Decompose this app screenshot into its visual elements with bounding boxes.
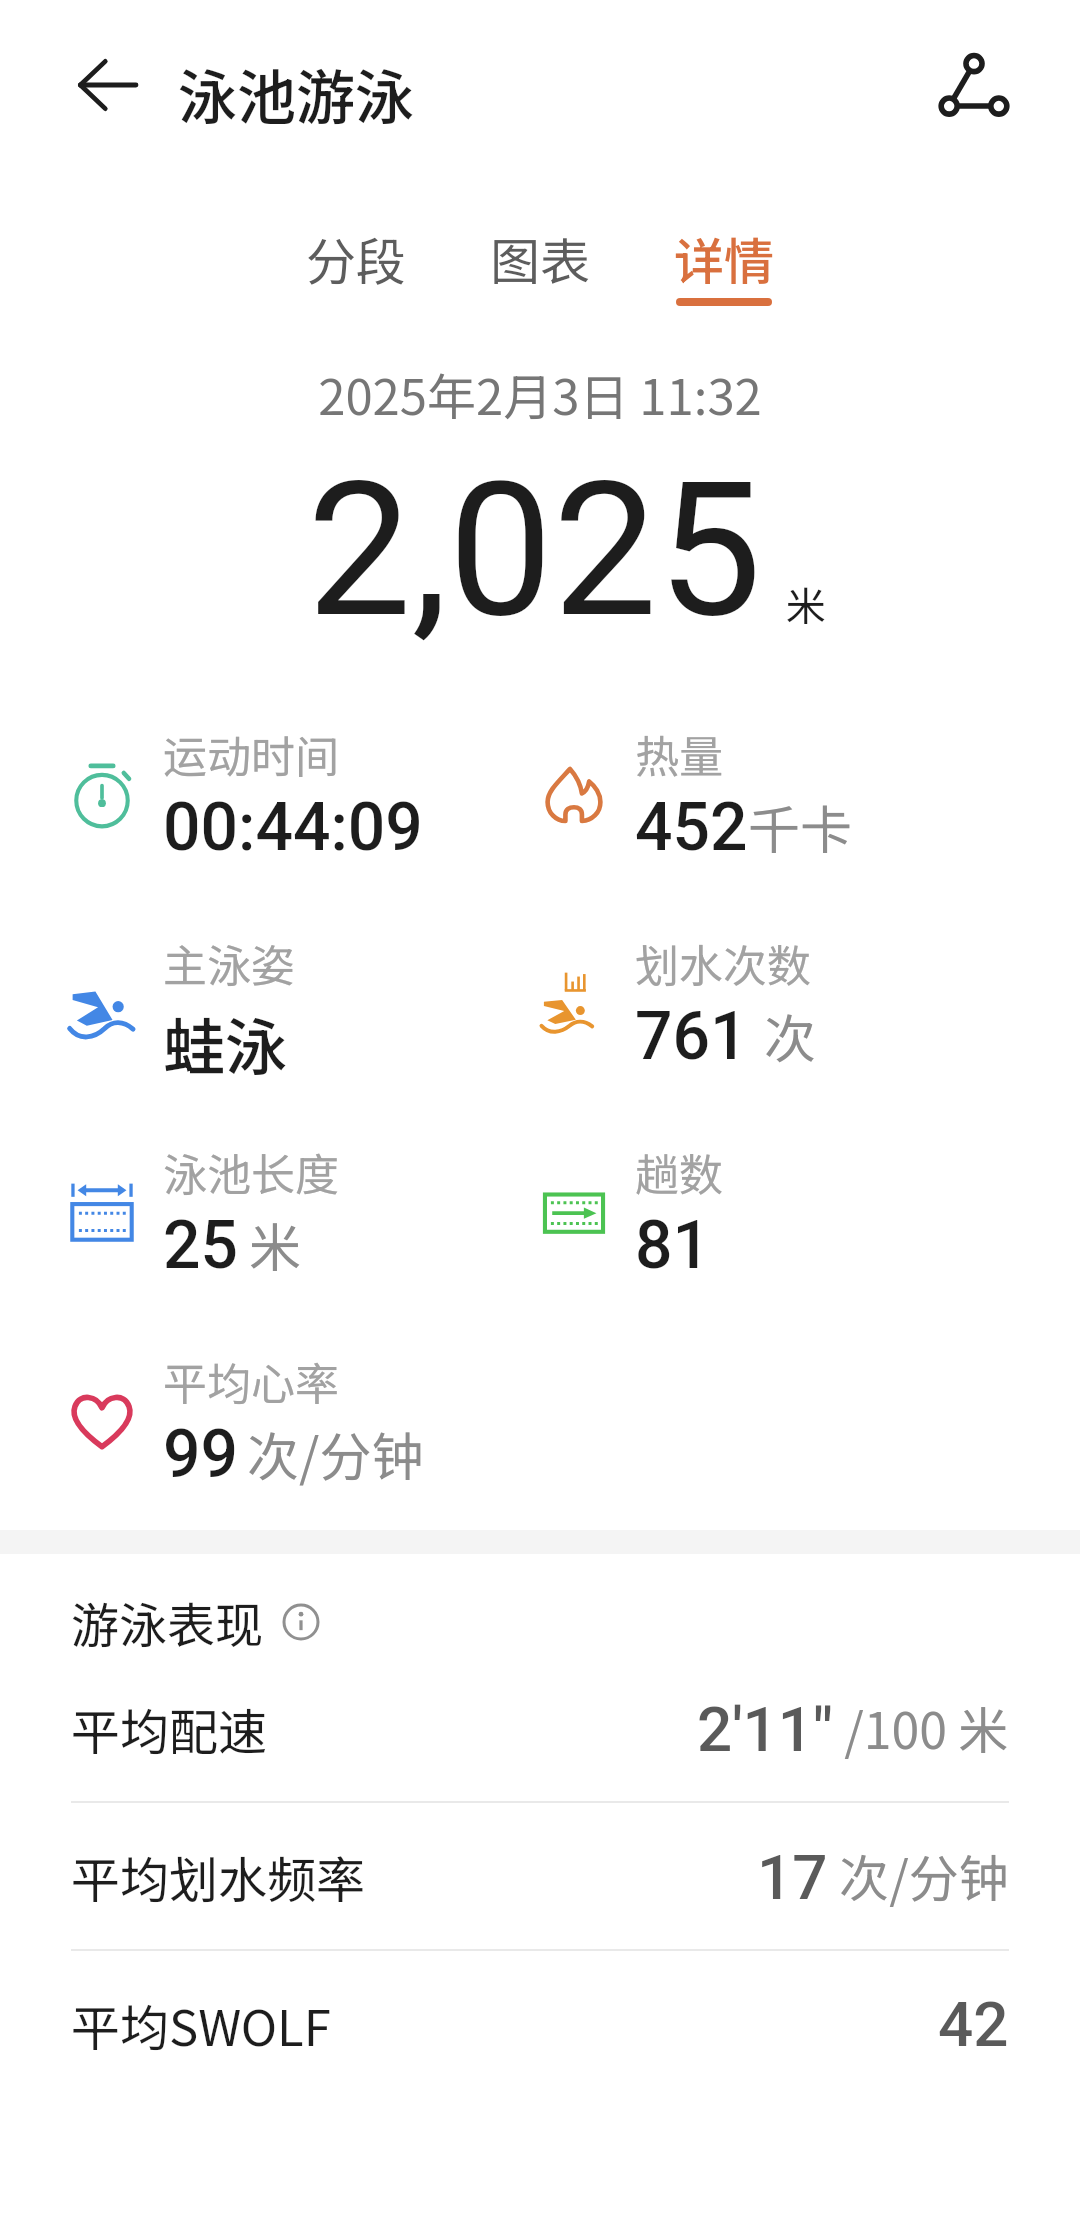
button[interactable]: 平均配速 — [0, 1655, 1080, 1801]
staticText: 运动时间 — [163, 722, 339, 786]
staticText: 761 — [635, 998, 748, 1075]
staticText: 平均划水频率 — [71, 1841, 366, 1912]
button[interactable]: 分段 — [276, 212, 436, 316]
staticText: 主泳姿 — [163, 931, 295, 995]
staticText: 米 — [786, 575, 826, 633]
staticText: 次 — [764, 998, 817, 1073]
staticText: 图表 — [490, 222, 590, 294]
staticText: 千卡 — [748, 789, 853, 864]
staticText: 99 — [163, 1416, 239, 1493]
staticText: 00:44:09 — [163, 789, 423, 866]
staticText: 2,025 — [307, 441, 762, 659]
staticText: 25 — [163, 1207, 239, 1284]
button[interactable]: Back — [44, 32, 170, 138]
staticText: 泳池长度 — [163, 1140, 339, 1204]
staticText: 蛙泳 — [163, 998, 288, 1088]
staticText: 分段 — [306, 222, 406, 294]
button[interactable]: 详情 — [644, 212, 804, 316]
staticText: 划水次数 — [635, 931, 811, 995]
staticText: 次/分钟 — [247, 1416, 424, 1491]
button[interactable]: 图表 — [460, 212, 620, 316]
staticText: 热量 — [635, 722, 723, 786]
staticText: /100 米 — [833, 1691, 1009, 1763]
staticText: 42 — [938, 1988, 1009, 2061]
staticText: 2025年2月3日 11:32 — [0, 358, 1080, 429]
staticText: 平均SWOLF — [71, 1989, 331, 2060]
staticText: 452 — [635, 789, 748, 866]
staticText: 2'11" — [697, 1693, 833, 1766]
staticText: 平均配速 — [71, 1693, 268, 1764]
staticText: 泳池游泳 — [178, 51, 415, 136]
staticText: 游泳表现 — [71, 1587, 264, 1657]
staticText: 米 — [249, 1207, 302, 1282]
staticText: 次/分钟 — [828, 1839, 1009, 1911]
staticText: 详情 — [674, 222, 774, 294]
staticText: 81 — [635, 1207, 711, 1284]
button[interactable]: Share — [908, 24, 1040, 146]
staticText: 平均心率 — [163, 1349, 339, 1413]
button[interactable]: 平均SWOLF — [0, 1951, 1080, 2097]
staticText: 趟数 — [635, 1140, 723, 1204]
button[interactable]: 平均划水频率 — [0, 1803, 1080, 1949]
staticText: 17 — [757, 1841, 828, 1914]
